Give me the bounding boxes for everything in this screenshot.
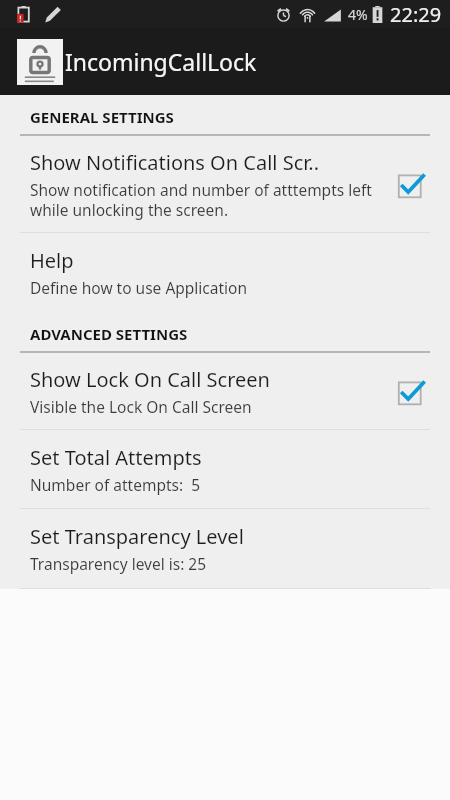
staticText: Show Lock On Call Screen <box>30 366 270 393</box>
staticText: Show Notifications On Call Scr.. <box>30 149 320 176</box>
button[interactable]: Show Lock On Call Screen <box>392 372 432 412</box>
staticText: Set Total Attempts <box>30 444 202 471</box>
button[interactable]: Set Transparency Level <box>0 509 450 588</box>
staticText: Visible the Lock On Call Screen <box>30 396 252 417</box>
staticText: 22:29 <box>390 1 442 28</box>
staticText: Show notification and number of atttempt… <box>30 179 382 221</box>
staticText: Help <box>30 247 74 274</box>
staticText: IncomingCallLock <box>65 46 257 77</box>
staticText: ADVANCED SETTINGS <box>30 324 188 344</box>
button[interactable]: Help <box>0 233 450 312</box>
staticText: Transparency level is: 25 <box>30 553 207 574</box>
staticText: Set Transparency Level <box>30 523 244 550</box>
button[interactable]: Show Notifications On Call Scr.. <box>392 165 432 205</box>
staticText: GENERAL SETTINGS <box>30 107 174 127</box>
button[interactable]: Show Lock On Call Screen <box>0 353 450 429</box>
staticText: Number of attempts: 5 <box>30 474 201 495</box>
staticText: Define how to use Application <box>30 277 248 298</box>
button[interactable]: Show Notifications On Call Scr.. <box>0 136 450 232</box>
button[interactable]: Set Total Attempts <box>0 430 450 508</box>
staticText: 4% <box>348 5 368 24</box>
